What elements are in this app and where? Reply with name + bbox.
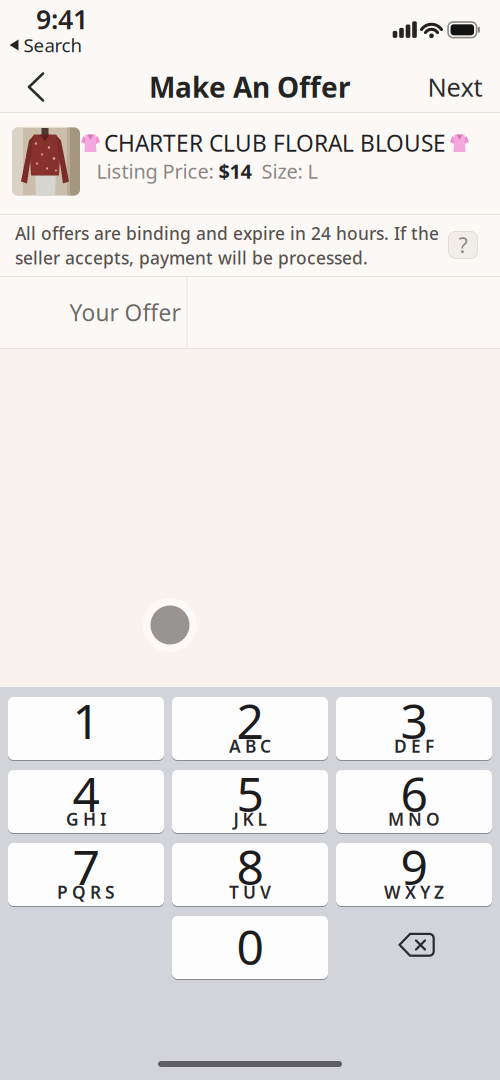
staticText: CHARTER CLUB FLORAL BLOUSE [104,128,446,158]
staticText: Make An Offer [149,68,351,106]
staticText: X [405,880,416,903]
button[interactable]: 4 [8,769,164,833]
staticText: 7 [72,835,99,898]
staticText: 6 [400,762,427,825]
button[interactable]: Delete [397,931,437,959]
button[interactable]: Next [427,70,482,104]
staticText: seller accepts, payment will be processe… [15,246,368,269]
staticText: U [243,880,256,903]
staticText: 8 [236,835,263,898]
staticText: 9 [400,835,427,898]
staticText: D [394,734,407,757]
staticText: Listing Price: [96,158,218,184]
button[interactable]: 7 [8,842,164,906]
button[interactable]: 5 [172,769,328,833]
button[interactable]: Back [29,73,43,100]
staticText: Size: L [251,158,317,184]
staticText: P [57,880,68,903]
staticText: C [260,734,271,757]
staticText: 0 [236,915,263,978]
staticText: Search [23,33,82,57]
staticText: A [229,734,241,757]
staticText: 2 [236,689,263,752]
staticText: G [66,807,79,830]
staticText: B [245,734,256,757]
staticText: L [257,807,266,830]
button[interactable]: Help [448,231,477,258]
staticText: 5 [236,762,263,825]
staticText: N [408,807,422,830]
staticText: O [426,807,440,830]
button[interactable]: 8 [172,842,328,906]
button[interactable]: Back to Search [9,33,82,57]
button[interactable]: 9 [336,842,492,906]
staticText: I [100,807,106,830]
staticText: K [242,807,253,830]
staticText: 4 [72,762,99,825]
staticText: E [411,734,421,757]
staticText: W [384,880,401,903]
staticText: Q [72,880,86,903]
staticText: 9:41 [36,1,88,37]
button[interactable]: 3 [336,696,492,760]
staticText: S [105,880,115,903]
staticText: V [260,880,271,903]
staticText: 3 [400,689,427,752]
button[interactable]: 6 [336,769,492,833]
button[interactable]: 1 [8,696,164,760]
staticText: M [388,807,404,830]
staticText: F [425,734,434,757]
staticText: Next [427,70,482,104]
button[interactable]: 2 [172,696,328,760]
button[interactable]: 0 [172,915,328,979]
staticText: H [83,807,96,830]
staticText: J [233,807,238,830]
staticText: ? [458,231,467,259]
staticText: Your Offer [69,297,180,327]
staticText: 1 [72,689,99,752]
staticText: Y [420,880,430,903]
staticText: R [90,880,101,903]
staticText: Z [434,880,444,903]
staticText: T [229,880,239,903]
staticText: All offers are binding and expire in 24 … [15,222,439,245]
staticText: $14 [218,158,251,184]
